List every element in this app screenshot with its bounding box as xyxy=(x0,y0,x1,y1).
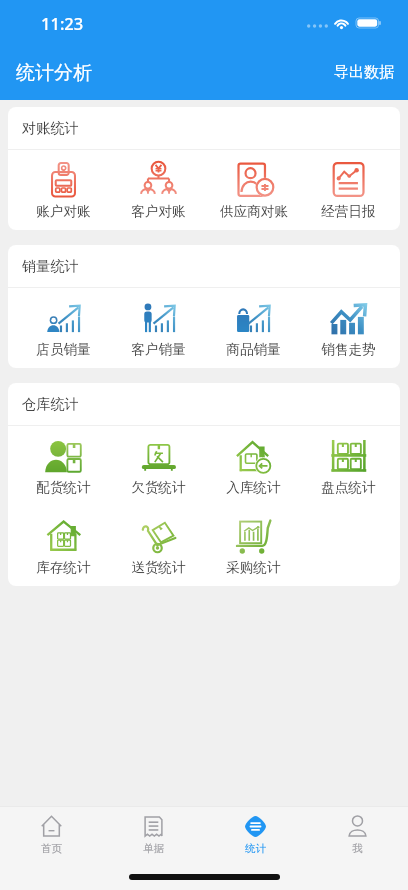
button[interactable]: 送货统计 xyxy=(111,506,206,586)
staticText: 我 xyxy=(352,842,363,855)
button[interactable]: 账户对账 xyxy=(16,150,111,230)
button[interactable]: 商品销量 xyxy=(206,288,301,368)
staticText: 统计 xyxy=(245,842,266,855)
staticText: 客户销量 xyxy=(131,341,186,358)
button[interactable]: 店员销量 xyxy=(16,288,111,368)
button[interactable]: 客户销量 xyxy=(111,288,206,368)
button[interactable]: 盘点统计 xyxy=(301,426,396,506)
button[interactable]: 统计 xyxy=(204,807,306,864)
staticText: 经营日报 xyxy=(321,203,376,220)
staticText: 商品销量 xyxy=(226,341,281,358)
button[interactable]: 欠货统计 xyxy=(111,426,206,506)
button[interactable]: 单据 xyxy=(102,807,204,864)
staticText: 销量统计 xyxy=(22,257,79,275)
button[interactable]: 配货统计 xyxy=(16,426,111,506)
staticText: 库存统计 xyxy=(36,559,91,576)
staticText: 配货统计 xyxy=(36,479,91,496)
button[interactable]: 我 xyxy=(306,807,408,864)
button[interactable]: 经营日报 xyxy=(301,150,396,230)
staticText: 供应商对账 xyxy=(220,203,288,220)
staticText: 单据 xyxy=(143,842,164,855)
staticText: 仓库统计 xyxy=(22,395,79,413)
button[interactable]: 客户对账 xyxy=(111,150,206,230)
button[interactable]: 销售走势 xyxy=(301,288,396,368)
staticText: 盘点统计 xyxy=(321,479,376,496)
staticText: 入库统计 xyxy=(226,479,281,496)
staticText: 欠货统计 xyxy=(131,479,186,496)
staticText: 送货统计 xyxy=(131,559,186,576)
staticText: 采购统计 xyxy=(226,559,281,576)
button[interactable]: 导出数据 xyxy=(320,51,408,94)
staticText: 统计分析 xyxy=(16,61,92,85)
staticText: 首页 xyxy=(41,842,62,855)
staticText: 导出数据 xyxy=(334,63,394,82)
button[interactable]: 库存统计 xyxy=(16,506,111,586)
staticText: 客户对账 xyxy=(131,203,186,220)
button[interactable]: 采购统计 xyxy=(206,506,301,586)
staticText: 销售走势 xyxy=(321,341,376,358)
staticText: 账户对账 xyxy=(36,203,91,220)
staticText: 店员销量 xyxy=(36,341,91,358)
button[interactable]: 首页 xyxy=(0,807,102,864)
button[interactable]: 入库统计 xyxy=(206,426,301,506)
staticText: 对账统计 xyxy=(22,119,79,137)
staticText: 11:23 xyxy=(41,12,84,34)
button[interactable]: 供应商对账 xyxy=(206,150,301,230)
